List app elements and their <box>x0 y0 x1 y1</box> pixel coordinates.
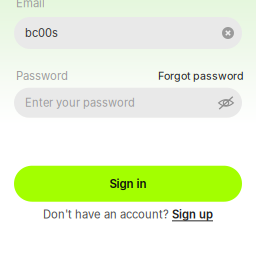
button[interactable]: Sign up <box>172 208 213 221</box>
staticText: Don't have an account? <box>43 208 169 221</box>
button[interactable]: Sign in <box>14 166 242 202</box>
staticText: Password <box>16 69 68 83</box>
staticText: Email <box>16 0 45 10</box>
staticText: Forgot password <box>158 69 244 82</box>
staticText: Sign in <box>109 177 146 191</box>
staticText: Sign up <box>172 208 213 221</box>
staticText: bc00s <box>25 26 58 40</box>
button[interactable]: Forgot password <box>158 69 244 82</box>
staticText: Enter your password <box>25 96 135 109</box>
button[interactable]: Show password <box>218 96 242 110</box>
button[interactable]: Clear email <box>222 27 242 39</box>
